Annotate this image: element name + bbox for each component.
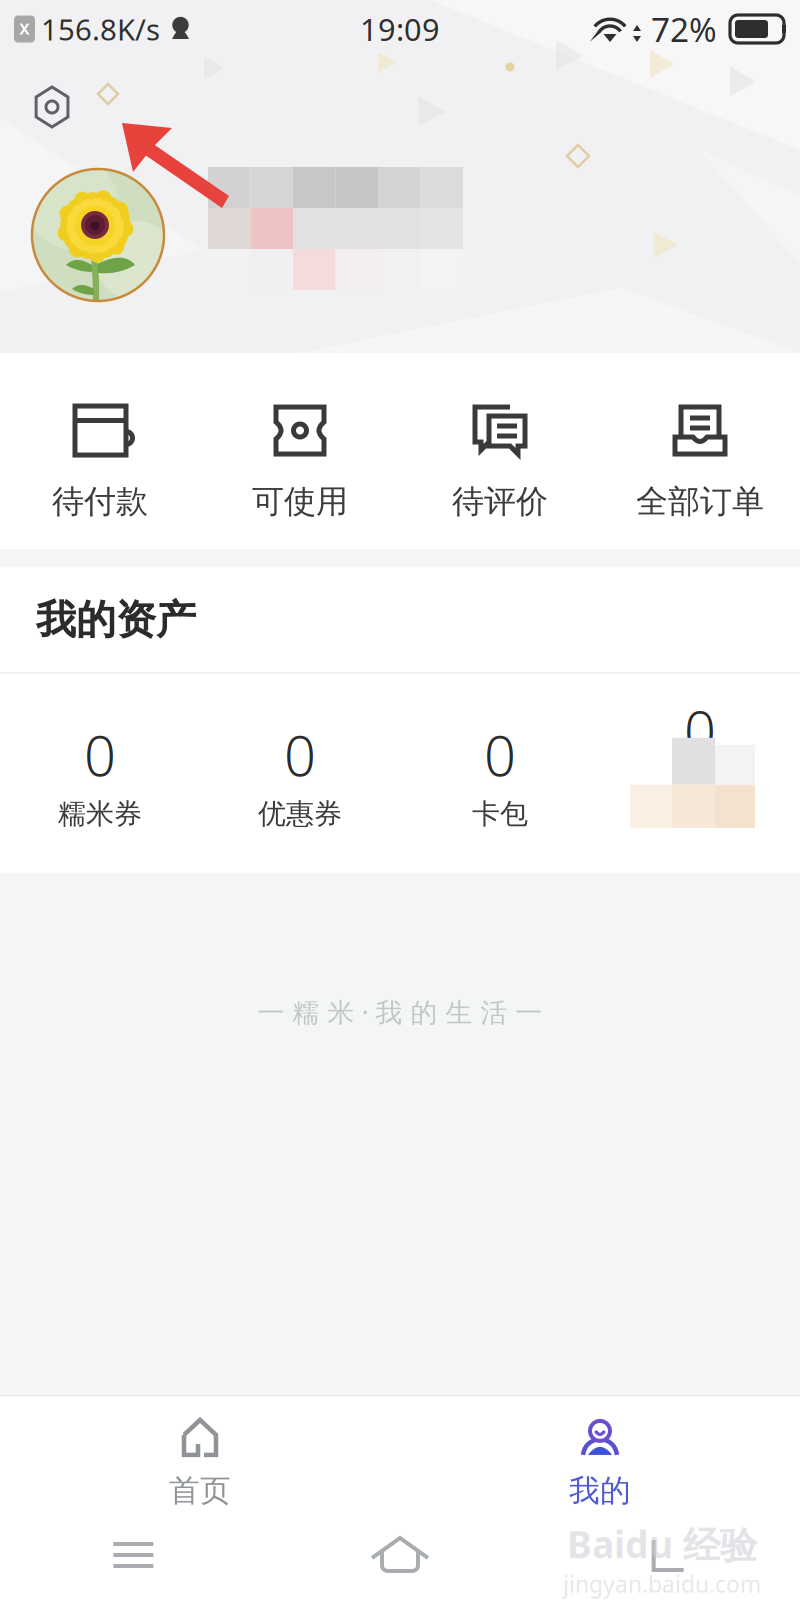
button[interactable]: Home — [267, 1534, 533, 1576]
button[interactable]: 待付款 — [0, 404, 200, 521]
staticText: 0 — [84, 717, 116, 792]
button[interactable]: 0 — [200, 731, 400, 831]
staticText: 0 — [284, 717, 316, 792]
staticText: 0 — [484, 717, 516, 792]
staticText: 0 — [684, 693, 716, 767]
button[interactable]: 首页 — [0, 1396, 400, 1510]
staticText: 首页 — [169, 1472, 231, 1510]
button[interactable]: 0 — [600, 706, 800, 856]
button[interactable]: 全部订单 — [600, 404, 800, 521]
button[interactable]: Settings — [17, 72, 87, 142]
button[interactable]: 0 — [0, 731, 200, 831]
staticText: 待付款 — [52, 482, 148, 521]
staticText: 156.8K/s — [41, 9, 160, 48]
button[interactable]: 可使用 — [200, 404, 400, 521]
staticText: 优惠券 — [258, 797, 342, 831]
staticText: 待评价 — [452, 482, 548, 521]
staticText: 我的 — [569, 1472, 631, 1510]
button[interactable]: 我的 — [400, 1396, 800, 1510]
staticText: jingyan.baidu.com — [563, 1569, 761, 1599]
button[interactable]: Back — [533, 1536, 800, 1574]
staticText: 19:09 — [360, 9, 440, 49]
button[interactable]: 待评价 — [400, 404, 600, 521]
staticText: 一 糯 米 · 我 的 生 活 一 — [257, 994, 542, 1029]
staticText: 糯米券 — [58, 797, 142, 831]
staticText: 72% — [651, 7, 717, 51]
button[interactable]: 0 — [400, 731, 600, 831]
staticText: Baidu 经验 — [567, 1519, 757, 1569]
staticText: 全部订单 — [636, 482, 764, 521]
staticText: 可使用 — [252, 482, 348, 521]
staticText: 我的资产 — [36, 595, 196, 644]
button[interactable]: Recents — [0, 1538, 267, 1572]
staticText: 卡包 — [472, 797, 528, 831]
